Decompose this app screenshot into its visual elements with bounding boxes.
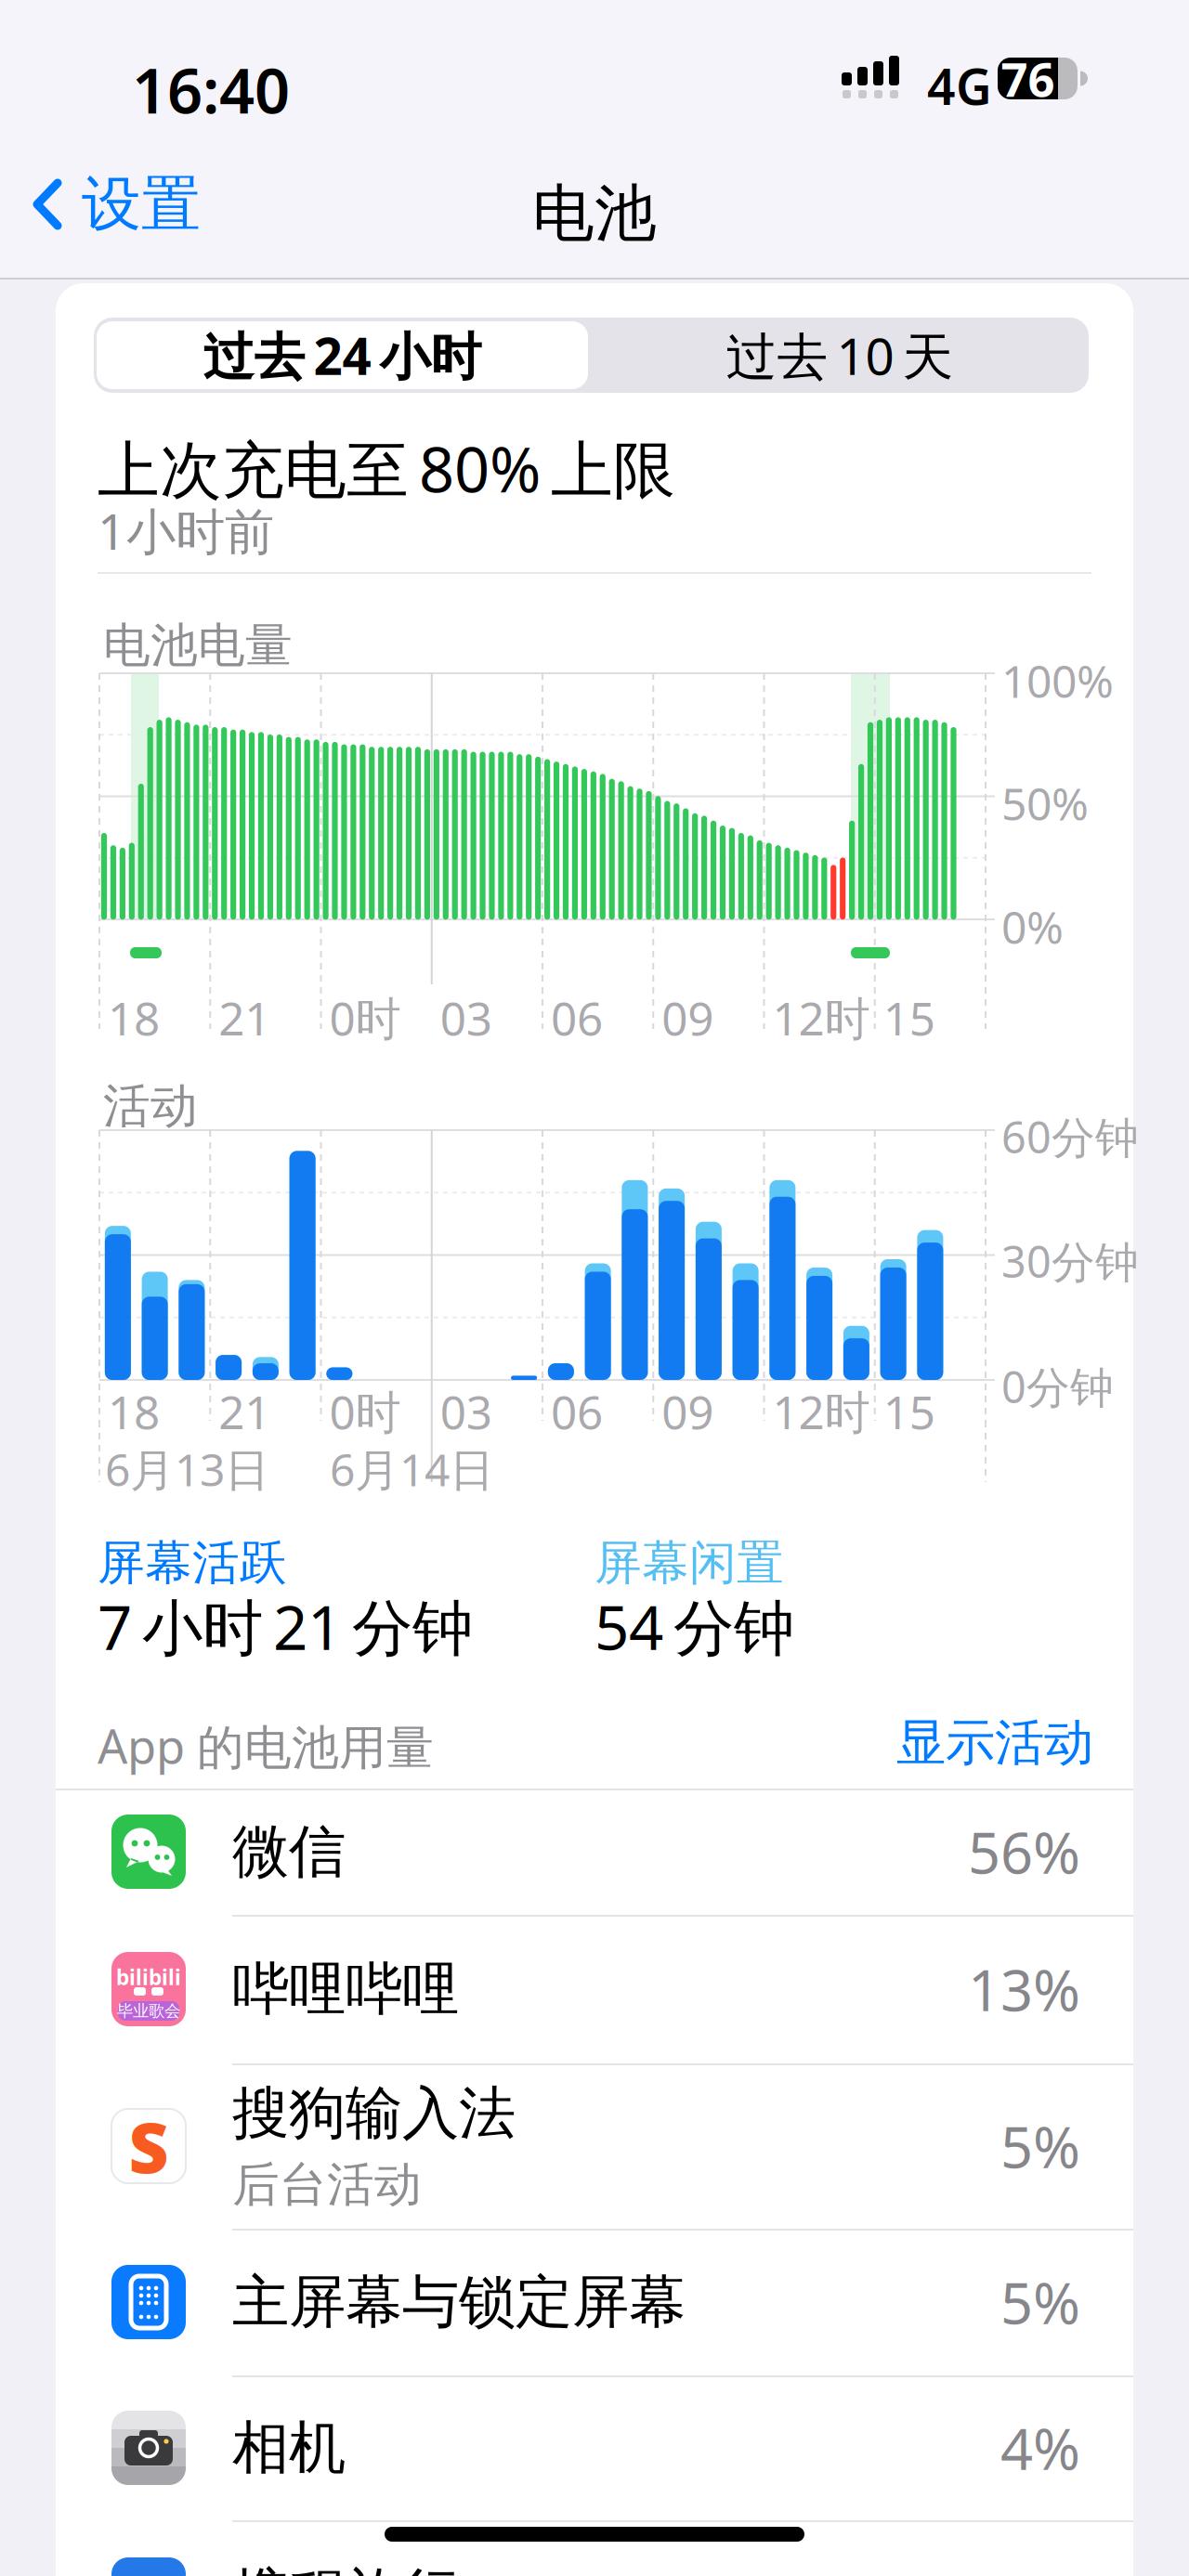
staticText: 03 [440, 1381, 492, 1442]
button[interactable]: bilibili [56, 1915, 1133, 2063]
staticText: 4G [927, 53, 992, 119]
button[interactable]: S [56, 2063, 1133, 2229]
staticText: 5% [1000, 2108, 1080, 2184]
staticText: 06 [551, 987, 603, 1048]
staticText: 1小时前 [98, 498, 274, 563]
staticText: 0时 [329, 987, 401, 1048]
staticText: 5% [1000, 2264, 1080, 2340]
staticText: 4% [1000, 2410, 1080, 2486]
staticText: 微信 [232, 1817, 346, 1887]
staticText: 主屏幕与锁定屏幕 [232, 2267, 686, 2337]
staticText: 09 [662, 987, 714, 1048]
staticText: 50% [1001, 774, 1089, 833]
staticText: 09 [662, 1381, 714, 1442]
staticText: 哔哩哔哩 [232, 1954, 459, 2024]
button[interactable]: 微信 [56, 1789, 1133, 1915]
staticText: 18 [108, 987, 160, 1048]
staticText: 屏幕闲置 [594, 1534, 784, 1592]
staticText: 54 分钟 [594, 1586, 794, 1667]
staticText: 电池电量 [103, 617, 293, 674]
staticText: 携程旅行 [232, 2560, 459, 2576]
staticText: 13% [968, 1951, 1080, 2027]
staticText: 06 [551, 1381, 603, 1442]
staticText: 上次充电至 80% 上限 [98, 427, 675, 509]
staticText: 18 [108, 1381, 160, 1442]
staticText: 21 [218, 987, 270, 1048]
staticText: 搜狗输入法 [232, 2078, 516, 2148]
staticText: 56% [968, 1814, 1080, 1889]
button[interactable]: 相机 [56, 2375, 1133, 2520]
staticText: 21 [218, 1381, 270, 1442]
staticText: 屏幕活跃 [98, 1534, 287, 1592]
staticText: 活动 [103, 1077, 198, 1135]
staticText: 100% [1001, 651, 1114, 710]
staticText: 后台活动 [232, 2156, 422, 2214]
staticText: 12时 [772, 987, 870, 1048]
staticText: 60分钟 [1001, 1108, 1139, 1165]
button[interactable]: 携程旅行 [56, 2520, 1133, 2576]
staticText: 0% [1001, 897, 1064, 956]
staticText: 15 [883, 987, 935, 1048]
button[interactable]: 设置 [35, 176, 201, 232]
staticText: 6月13日 [105, 1439, 269, 1499]
staticText: 30分钟 [1001, 1232, 1139, 1290]
staticText: 76 [1001, 47, 1055, 110]
staticText: App 的电池用量 [98, 1714, 434, 1777]
staticText: 电池 [532, 176, 657, 252]
staticText: 0时 [329, 1381, 401, 1442]
staticText: 16:40 [132, 48, 290, 130]
staticText: 7 小时 21 分钟 [98, 1586, 473, 1667]
staticText: 03 [440, 987, 492, 1048]
staticText: 过去 10 天 [726, 321, 954, 389]
staticText: 12时 [772, 1381, 870, 1442]
staticText: 毕业歌会 [117, 2001, 180, 2021]
button[interactable]: 过去 10 天 [591, 318, 1089, 393]
staticText: 15 [883, 1381, 935, 1442]
staticText: S [129, 2100, 169, 2192]
button[interactable]: 显示活动 [896, 1712, 1093, 1773]
staticText: 0分钟 [1001, 1358, 1114, 1415]
staticText: 6月14日 [330, 1439, 494, 1499]
staticText: 设置 [82, 168, 201, 241]
staticText: 过去 24 小时 [203, 321, 482, 389]
staticText: bilibili [116, 1963, 181, 1991]
staticText: 相机 [232, 2413, 346, 2483]
button[interactable]: 主屏幕与锁定屏幕 [56, 2229, 1133, 2375]
button[interactable]: 过去 24 小时 [94, 318, 591, 393]
staticText: 显示活动 [896, 1712, 1093, 1773]
